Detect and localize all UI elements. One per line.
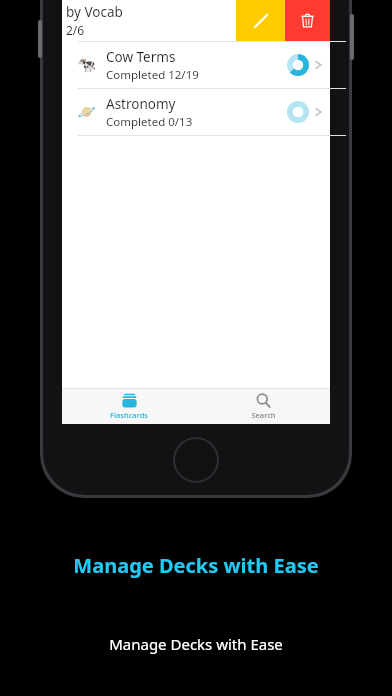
button[interactable]: 🐄 bbox=[62, 42, 330, 88]
button[interactable]: Search bbox=[196, 388, 330, 424]
button[interactable]: Flashcards bbox=[62, 388, 196, 424]
staticText: Search bbox=[251, 410, 276, 420]
staticText: Manage Decks with Ease bbox=[0, 552, 392, 579]
staticText: Flashcards bbox=[110, 410, 148, 420]
staticText: Completed 12/19 bbox=[106, 67, 199, 83]
button[interactable]: 🪐 bbox=[62, 89, 330, 135]
staticText: Cow Terms bbox=[106, 48, 176, 66]
staticText: 🪐 bbox=[77, 103, 96, 121]
staticText: 🐄 bbox=[77, 56, 96, 74]
staticText: Completed 0/13 bbox=[106, 114, 193, 130]
staticText: Manage Decks with Ease bbox=[0, 634, 392, 654]
button[interactable]: Edit bbox=[236, 0, 285, 41]
staticText: by Vocab bbox=[66, 3, 123, 21]
button[interactable]: by Vocab bbox=[62, 0, 330, 41]
staticText: Astronomy bbox=[106, 95, 176, 113]
staticText: 2/6 bbox=[66, 22, 85, 38]
button[interactable]: Delete bbox=[285, 0, 330, 41]
